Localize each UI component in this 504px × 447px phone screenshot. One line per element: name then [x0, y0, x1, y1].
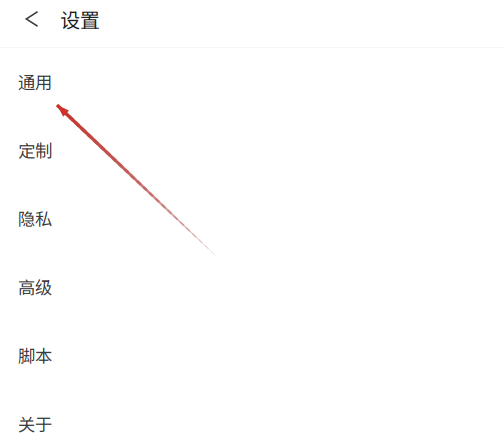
button[interactable]: 高级 [0, 252, 504, 321]
button[interactable]: 关于 [0, 389, 504, 447]
staticText: 设置 [60, 4, 100, 33]
staticText: 脚本 [18, 343, 52, 368]
button[interactable]: 定制 [0, 116, 504, 184]
button[interactable]: 脚本 [0, 321, 504, 389]
button[interactable]: 通用 [0, 47, 504, 116]
staticText: 关于 [18, 411, 52, 436]
button[interactable]: Back [16, 2, 48, 36]
staticText: 通用 [18, 69, 52, 94]
staticText: 高级 [18, 274, 52, 299]
staticText: 定制 [18, 137, 52, 162]
button[interactable]: 隐私 [0, 184, 504, 252]
staticText: 隐私 [18, 206, 52, 231]
